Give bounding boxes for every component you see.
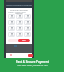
button[interactable]: Select Payment Method — [6, 2, 32, 8]
button[interactable] — [16, 26, 23, 31]
staticText: Choose Payment Option — [6, 9, 32, 15]
staticText: Debit / Credit Cards — [8, 11, 26, 14]
staticText: Pay with cards, wallets or UPI — [17, 64, 48, 67]
button[interactable] — [8, 32, 15, 37]
staticText: PAY — [22, 39, 26, 42]
button[interactable]: PAY — [18, 39, 30, 42]
button[interactable] — [8, 26, 15, 31]
staticText: Fast & Secure Payment — [16, 60, 49, 64]
button[interactable] — [16, 14, 23, 19]
button[interactable] — [16, 32, 23, 37]
button[interactable] — [24, 14, 31, 19]
staticText: Select Payment Method — [6, 4, 32, 7]
button[interactable] — [8, 20, 15, 25]
button[interactable] — [16, 20, 23, 25]
button[interactable] — [8, 14, 15, 19]
button[interactable] — [24, 32, 31, 37]
button[interactable] — [24, 20, 31, 25]
button[interactable] — [24, 26, 31, 31]
